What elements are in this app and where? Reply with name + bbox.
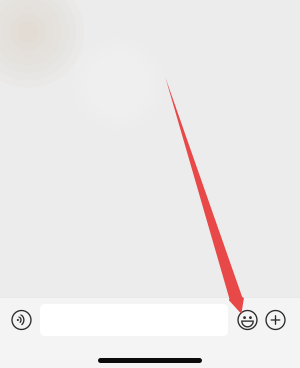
button[interactable]: More [261,298,289,342]
button[interactable]: Emoji [233,298,261,342]
button[interactable]: Message [0,304,300,336]
button[interactable]: Voice message [3,298,39,342]
